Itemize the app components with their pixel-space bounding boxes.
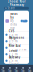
staticText: Choose Your: [7, 0, 25, 3]
staticText: CVS: [9, 29, 14, 33]
button[interactable]: Rite Aid: [4, 45, 29, 51]
staticText: Search: [7, 6, 15, 10]
staticText: Tab: [21, 69, 25, 72]
staticText: By distance: [10, 19, 17, 30]
button[interactable]: Walgreens: [4, 38, 29, 44]
button[interactable]: Costco: [4, 51, 29, 57]
button[interactable]: Search: [4, 7, 29, 10]
staticText: Nearby: [10, 12, 18, 19]
staticText: 1.2 mi 9 PM: [9, 48, 26, 51]
staticText: Pharmacy: [9, 3, 23, 7]
button[interactable]: Tab: [26, 67, 33, 72]
staticText: Map: [22, 17, 27, 24]
staticText: Tab: [1, 69, 5, 72]
button[interactable]: Tab: [13, 67, 20, 72]
staticText: Costco: [9, 49, 18, 52]
staticText: Walgreens: [9, 36, 24, 39]
button[interactable]: Safeway: [4, 58, 29, 64]
button[interactable]: Tab: [0, 67, 7, 72]
staticText: Safeway: [9, 55, 20, 59]
staticText: 2.8 mi Closed: [9, 59, 19, 66]
staticText: 2.1 mi Open: [9, 52, 18, 60]
staticText: Tab: [8, 69, 12, 72]
staticText: Rite Aid: [9, 44, 21, 48]
button[interactable]: Map: [21, 20, 28, 22]
button[interactable]: Tab: [7, 67, 13, 72]
button[interactable]: CVS: [4, 32, 29, 38]
staticText: 0.4 mi Open: [9, 33, 18, 40]
staticText: Tab: [28, 69, 32, 72]
staticText: Tab: [14, 69, 18, 72]
staticText: 0.9 mi Open: [9, 39, 18, 47]
button[interactable]: Tab: [20, 67, 26, 72]
